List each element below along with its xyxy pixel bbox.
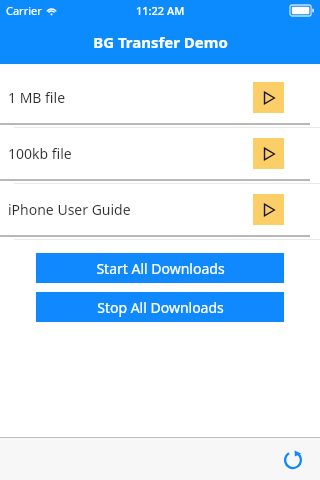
button[interactable]: Start download 100kb file bbox=[253, 138, 284, 169]
button[interactable]: Stop All Downloads bbox=[36, 292, 284, 322]
staticText: 100kb file bbox=[8, 144, 253, 163]
staticText: iPhone User Guide bbox=[8, 200, 253, 219]
button[interactable]: Start download 1 MB file bbox=[253, 82, 284, 113]
button[interactable]: Refresh bbox=[278, 444, 308, 474]
button[interactable]: 1 MB file bbox=[0, 72, 320, 123]
button[interactable]: Start All Downloads bbox=[36, 253, 284, 283]
button[interactable]: iPhone User Guide bbox=[0, 184, 320, 235]
staticText: Stop All Downloads bbox=[97, 298, 224, 317]
button[interactable]: 100kb file bbox=[0, 128, 320, 179]
staticText: 11:22 AM bbox=[136, 3, 185, 18]
staticText: Start All Downloads bbox=[96, 259, 225, 278]
staticText: BG Transfer Demo bbox=[93, 32, 228, 52]
button[interactable]: Start download iPhone User Guide bbox=[253, 194, 284, 225]
staticText: 1 MB file bbox=[8, 88, 253, 107]
staticText: Carrier bbox=[6, 3, 42, 18]
